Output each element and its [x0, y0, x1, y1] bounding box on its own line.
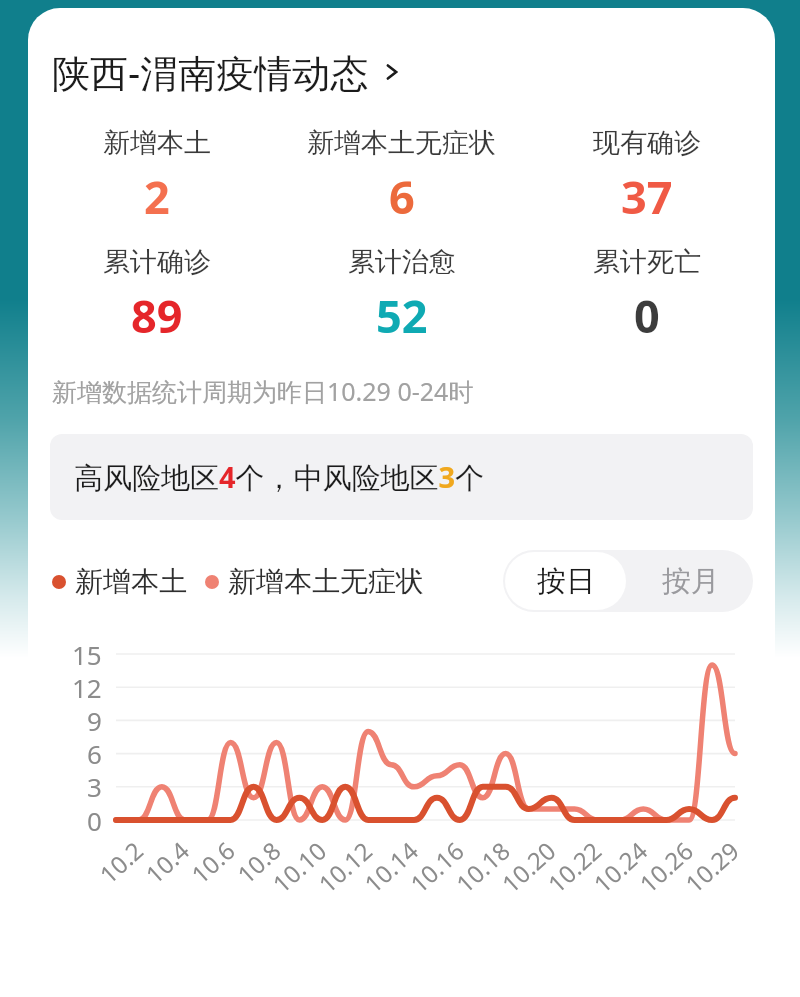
staticText: 新增本土 — [103, 126, 211, 160]
staticText: 高风险地区4个，中风险地区3个 — [74, 457, 485, 497]
button[interactable]: 高风险地区4个，中风险地区3个 — [50, 434, 753, 520]
button[interactable]: 新增本土 — [52, 564, 187, 599]
staticText: 新增数据统计周期为昨日10.29 0-24时 — [52, 374, 474, 408]
staticText: 6 — [389, 166, 415, 227]
staticText: 现有确诊 — [593, 126, 701, 160]
staticText: 新增本土无症状 — [228, 564, 424, 599]
staticText: 累计确诊 — [103, 245, 211, 279]
staticText: 52 — [376, 285, 428, 346]
staticText: 37 — [621, 166, 673, 227]
staticText: 新增本土无症状 — [307, 126, 496, 160]
staticText: 累计死亡 — [593, 245, 701, 279]
button[interactable]: 现有确诊 — [524, 126, 769, 227]
button[interactable]: 累计死亡 — [524, 245, 769, 346]
staticText: 按日 — [537, 563, 595, 600]
button[interactable]: 累计治愈 — [279, 245, 524, 346]
button[interactable]: 按月 — [628, 552, 753, 610]
staticText: 89 — [131, 285, 183, 346]
button[interactable]: 按日 — [505, 552, 626, 610]
staticText: 0 — [634, 285, 660, 346]
staticText: 新增本土 — [75, 564, 187, 599]
button[interactable]: 新增本土无症状 — [279, 126, 524, 227]
staticText: 2 — [144, 166, 170, 227]
button[interactable]: 新增本土 — [34, 126, 279, 227]
staticText: 按月 — [662, 563, 720, 600]
staticText: 陕西-渭南疫情动态 — [52, 46, 369, 98]
button[interactable]: 新增本土无症状 — [205, 564, 424, 599]
staticText: 累计治愈 — [348, 245, 456, 279]
button[interactable]: 累计确诊 — [34, 245, 279, 346]
button[interactable]: 陕西-渭南疫情动态 — [28, 46, 775, 98]
